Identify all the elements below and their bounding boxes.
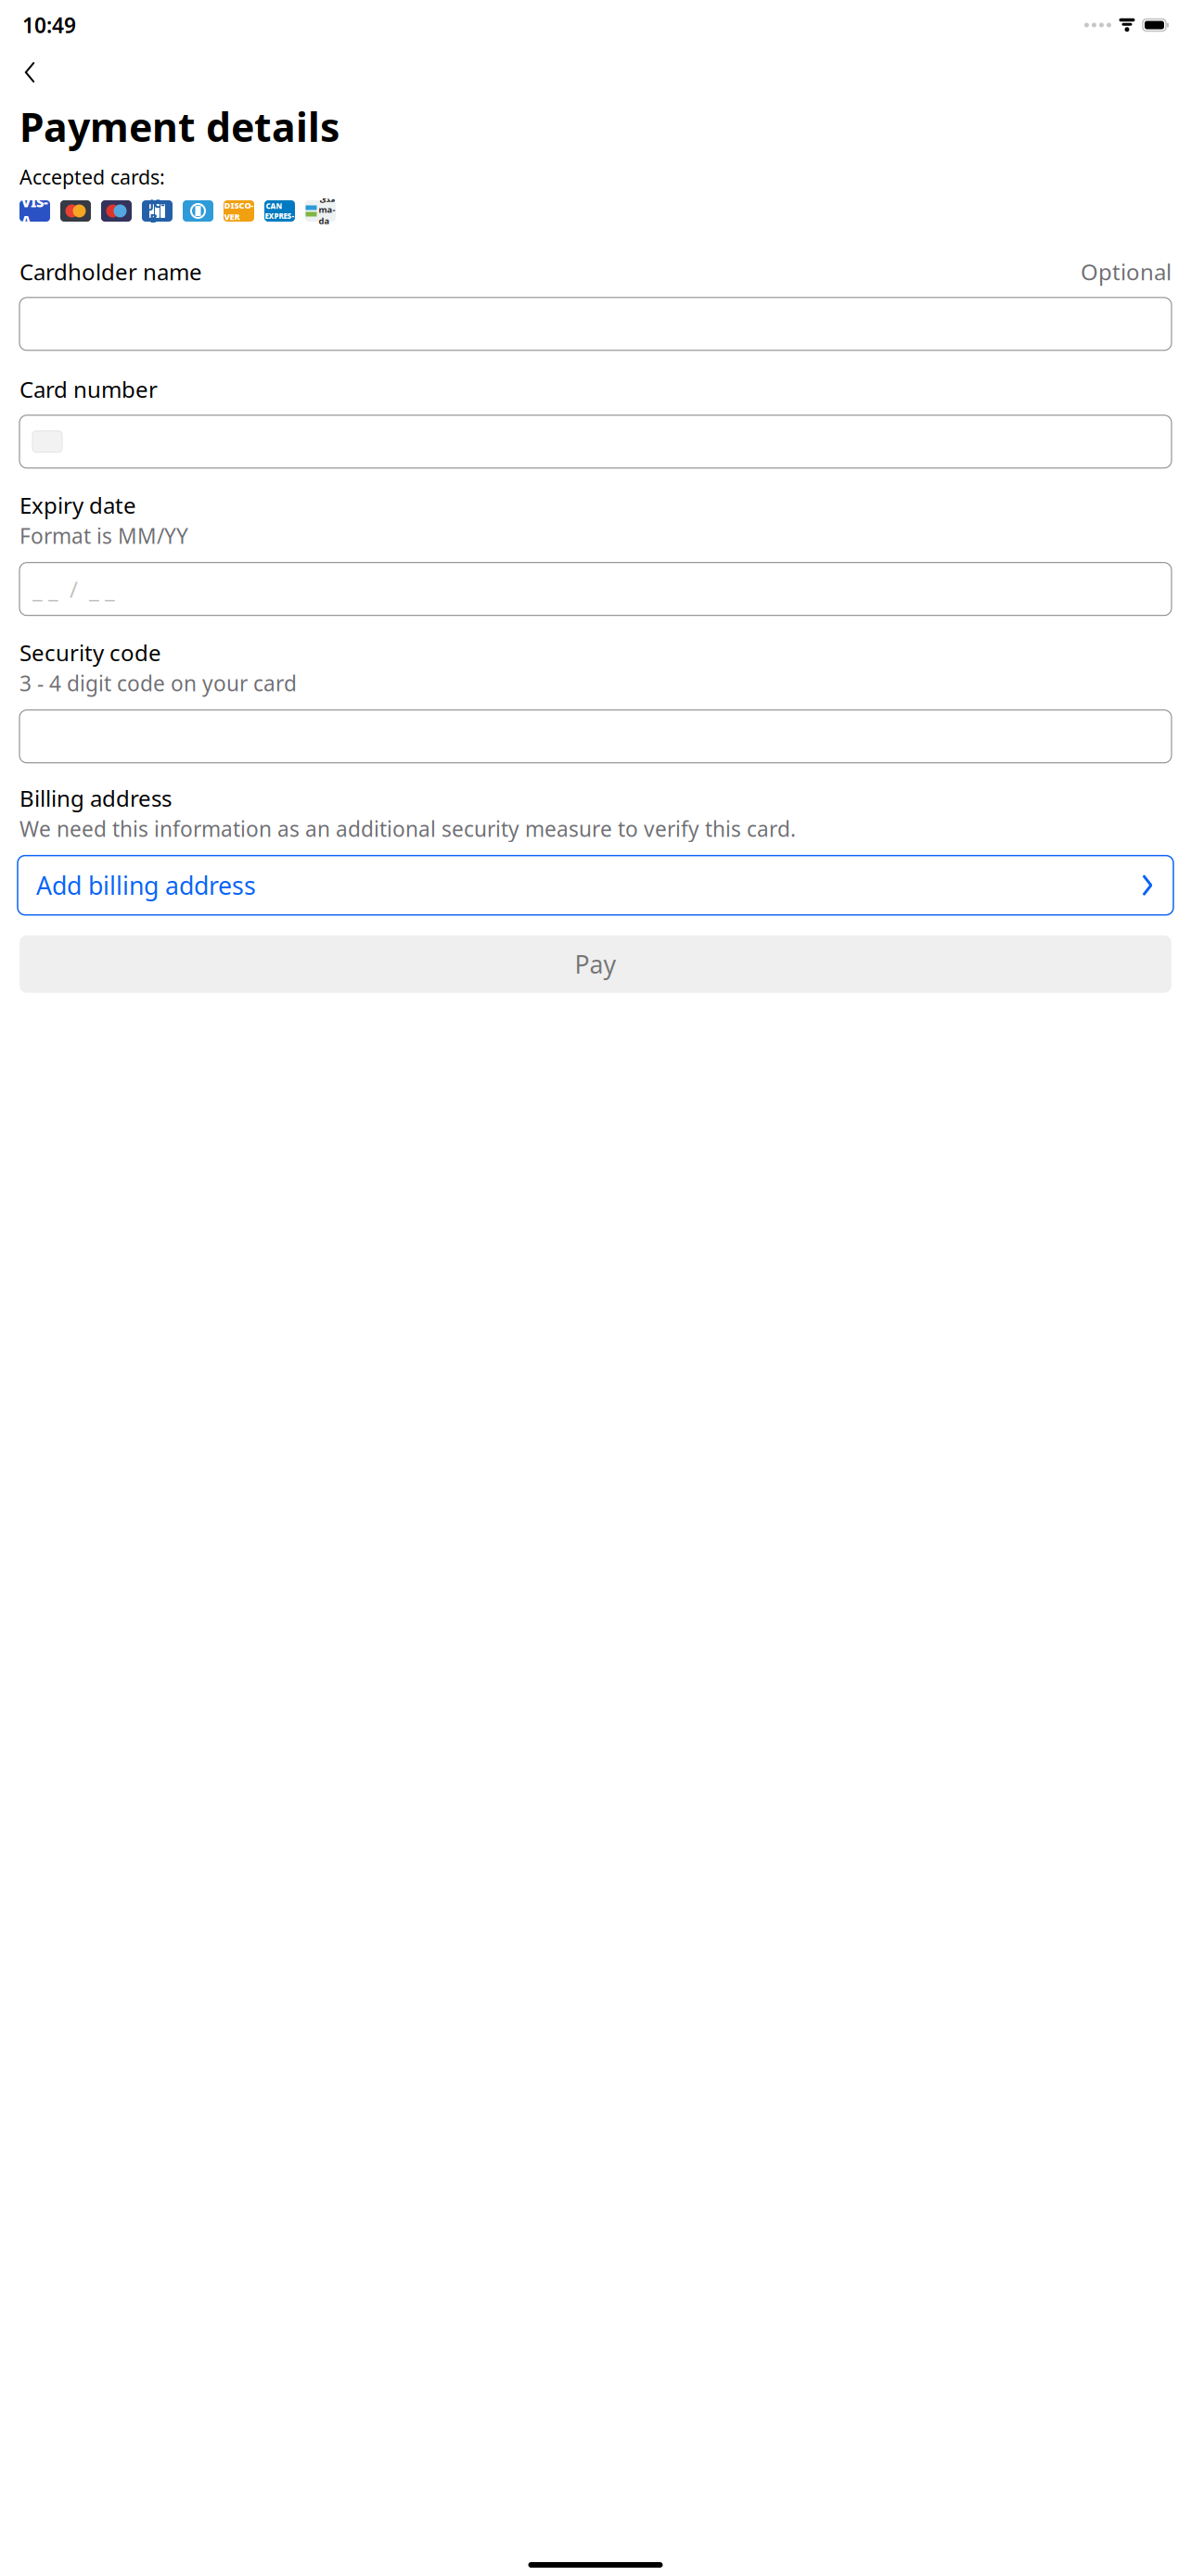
staticText: Expiry date	[19, 490, 136, 520]
staticText: We need this information as an additiona…	[19, 815, 796, 843]
staticText: EXPRESS	[265, 211, 295, 231]
staticText: JCB	[150, 196, 165, 226]
staticText: Pay	[575, 948, 616, 980]
staticText: Payment details	[19, 100, 339, 153]
staticText: Billing address	[19, 783, 172, 813]
staticText: Card number	[19, 375, 158, 404]
staticText: Security code	[19, 638, 161, 667]
staticText: Optional	[1081, 257, 1172, 286]
staticText: Format is MM/YY	[19, 522, 188, 550]
staticText: VISA	[21, 193, 48, 229]
staticText: _ _ / _ _	[32, 574, 115, 604]
staticText: Cardholder name	[19, 257, 202, 286]
staticText: مدى	[319, 195, 335, 204]
button[interactable]: Add billing address	[18, 856, 1173, 915]
staticText: DISCOVER	[224, 199, 254, 222]
staticText: AMERICAN	[266, 191, 294, 211]
button[interactable]: Back	[10, 56, 49, 89]
staticText: 10:49	[22, 11, 76, 39]
staticText: Accepted cards:	[19, 164, 165, 190]
button[interactable]: Pay	[19, 935, 1172, 993]
staticText: mada	[319, 204, 335, 227]
staticText: 3 - 4 digit code on your card	[19, 669, 297, 697]
staticText: Add billing address	[36, 869, 256, 902]
